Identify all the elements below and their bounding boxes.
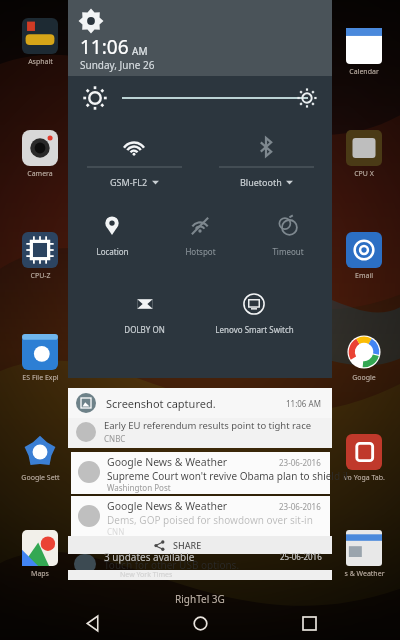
staticText: Google Sett	[21, 473, 60, 483]
button[interactable]: ES File Expl	[14, 334, 66, 383]
staticText: Supreme Court won't revive Obama plan to…	[107, 469, 354, 483]
staticText: Lenovo Smart Switch	[215, 324, 294, 335]
button[interactable]: s & Weather	[338, 530, 390, 579]
button[interactable]: Home	[183, 606, 217, 640]
button[interactable]: Google News & Weather	[71, 496, 330, 538]
staticText: Calendar	[349, 67, 379, 77]
button[interactable]: Timeout	[244, 208, 332, 274]
button[interactable]: CPU-Z	[14, 232, 66, 281]
button[interactable]: GSM-FL2	[68, 126, 200, 202]
button[interactable]: SHARE	[68, 536, 332, 554]
button[interactable]: Touch for other USB options.	[68, 554, 332, 574]
button[interactable]: Calendar	[338, 28, 390, 77]
staticText: ES File Expl	[22, 373, 59, 383]
staticText: Email	[355, 271, 373, 281]
staticText: Screenshot captured.	[106, 396, 216, 411]
staticText: Camera	[27, 169, 53, 179]
staticText: 11:06	[80, 34, 129, 60]
staticText: s & Weather	[344, 569, 385, 579]
staticText: CNBC	[104, 433, 126, 444]
staticText: 25-06-2016	[280, 551, 322, 562]
staticText: Touch for other USB options.	[104, 558, 240, 572]
staticText: Google News & Weather	[107, 499, 228, 513]
staticText: Washington Post	[107, 482, 171, 493]
button[interactable]: Location	[68, 208, 156, 274]
button[interactable]: Hotspot	[156, 208, 244, 274]
staticText: RighTel 3G	[175, 592, 225, 606]
staticText: Early EU referendum results point to tig…	[104, 419, 312, 432]
button[interactable]: Bluetooth	[200, 126, 332, 202]
staticText: DOLBY ON	[124, 324, 165, 335]
staticText: Sunday, June 26	[80, 58, 155, 72]
staticText: CPU-Z	[30, 271, 51, 281]
button[interactable]: Google	[338, 334, 390, 383]
button[interactable]: Brightness slider	[122, 86, 316, 110]
button[interactable]: DOLBY ON	[106, 286, 183, 352]
staticText: vo Yoga Tab.	[344, 473, 385, 483]
button[interactable]: Google Sett	[14, 434, 66, 483]
staticText: Location	[96, 246, 129, 257]
button[interactable]: CPU X	[338, 130, 390, 179]
button[interactable]: Recents	[292, 606, 326, 640]
staticText: 23-06-2016	[279, 457, 321, 468]
staticText: 3 updates available	[104, 550, 195, 564]
staticText: Hotspot	[185, 246, 216, 257]
staticText: AM	[132, 44, 148, 58]
staticText: Google News & Weather	[107, 455, 228, 469]
staticText: Dems, GOP poised for showdown over sit-i…	[107, 513, 313, 527]
staticText: Bluetooth	[240, 176, 282, 188]
staticText: New York Times	[120, 570, 173, 580]
button[interactable]: vo Yoga Tab.	[338, 434, 390, 483]
staticText: Google	[352, 373, 376, 383]
button[interactable]: Email	[338, 232, 390, 281]
staticText: Timeout	[272, 246, 304, 257]
button[interactable]: Screenshot captured.	[68, 388, 332, 418]
staticText: 11:06 AM	[286, 398, 321, 409]
staticText: Maps	[31, 569, 49, 579]
button[interactable]: Google News & Weather	[71, 452, 330, 494]
staticText: 23-06-2016	[279, 501, 321, 512]
button[interactable]: Maps	[14, 530, 66, 579]
button[interactable]: Back	[75, 606, 109, 640]
button[interactable]: Early EU referendum results point to tig…	[68, 418, 332, 448]
staticText: CNN	[107, 526, 125, 537]
button[interactable]: Settings	[80, 10, 102, 32]
button[interactable]: Asphalt	[14, 18, 66, 67]
button[interactable]: Lenovo Smart Switch	[201, 286, 307, 352]
staticText: GSM-FL2	[110, 176, 148, 188]
staticText: SHARE	[173, 539, 202, 551]
button[interactable]: Camera	[14, 130, 66, 179]
staticText: Asphalt	[28, 57, 53, 67]
button[interactable]: Auto brightness	[84, 87, 106, 109]
staticText: CPU X	[354, 169, 374, 179]
